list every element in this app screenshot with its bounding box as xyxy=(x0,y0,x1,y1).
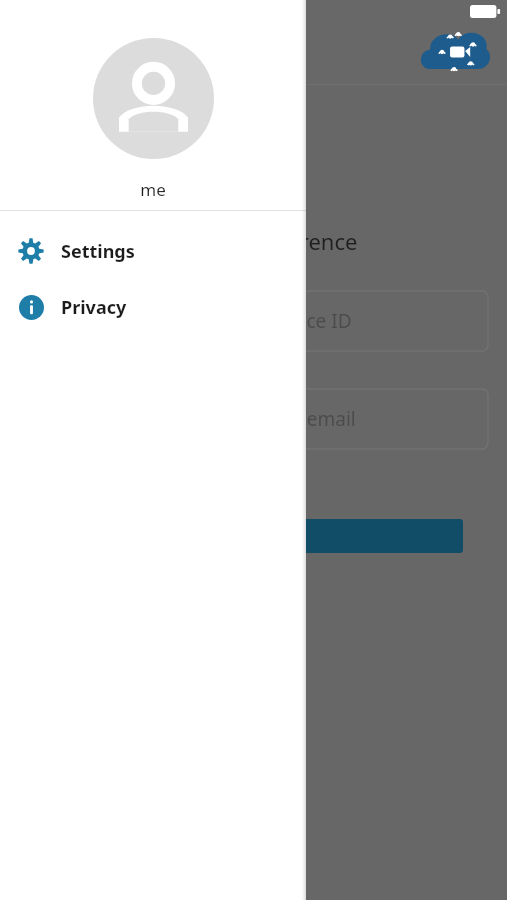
staticText: Conference ID xyxy=(224,308,352,334)
staticText: Settings xyxy=(61,239,135,264)
other: Privacy information xyxy=(19,295,44,320)
other: Settings xyxy=(18,238,44,264)
button[interactable] xyxy=(200,519,463,553)
other: App logo xyxy=(418,26,490,76)
staticText: me xyxy=(140,178,166,201)
button[interactable]: Name or email xyxy=(200,389,488,449)
button[interactable]: Privacy information xyxy=(0,279,306,335)
staticText: Join a conference xyxy=(180,226,358,256)
button[interactable]: Conference ID xyxy=(200,291,488,351)
staticText: Name or email xyxy=(224,406,356,432)
staticText: Privacy xyxy=(61,295,127,320)
button[interactable]: Settings xyxy=(0,223,306,279)
button[interactable] xyxy=(0,0,507,900)
